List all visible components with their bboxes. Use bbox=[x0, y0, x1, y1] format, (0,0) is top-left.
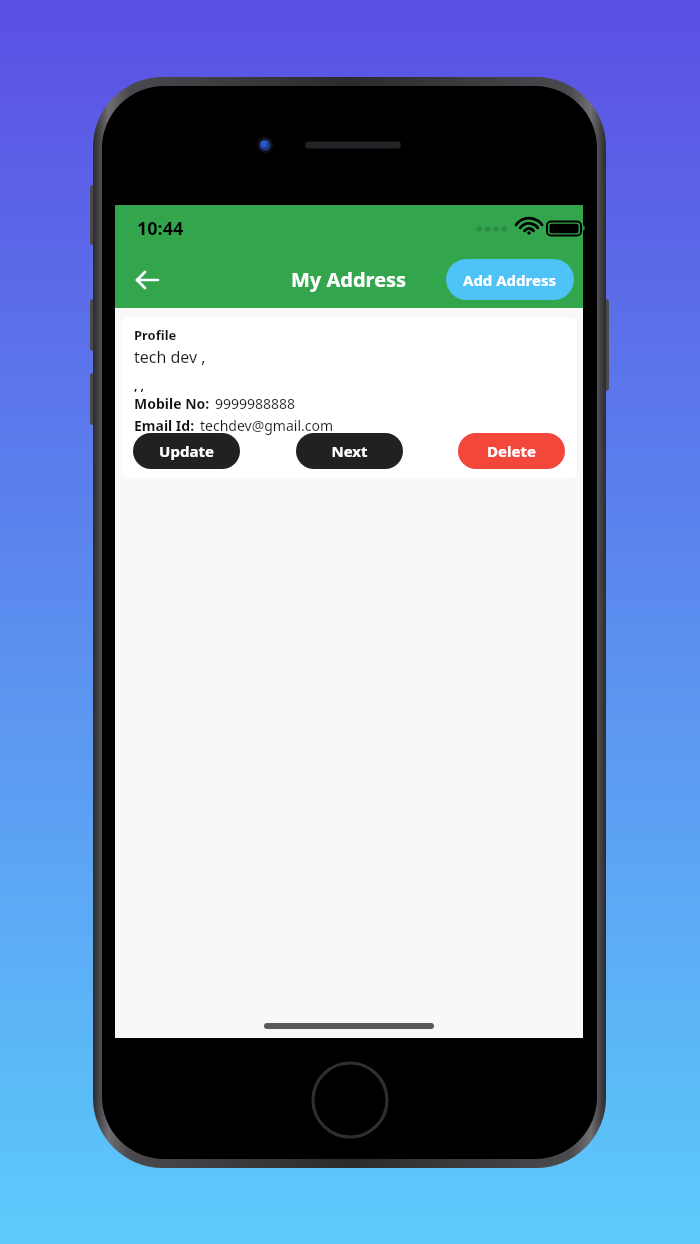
button[interactable]: Next bbox=[296, 433, 403, 469]
staticText: Profile bbox=[134, 326, 177, 344]
staticText: 10:44 bbox=[137, 216, 184, 241]
staticText: 9999988888 bbox=[215, 394, 296, 413]
staticText: Update bbox=[159, 441, 214, 461]
staticText: tech dev , bbox=[134, 346, 206, 368]
staticText: , , bbox=[134, 377, 144, 393]
staticText: techdev@gmail.com bbox=[200, 416, 334, 435]
button[interactable]: Back bbox=[125, 258, 169, 302]
button[interactable]: Profile bbox=[121, 317, 577, 478]
staticText: Mobile No: bbox=[134, 394, 210, 413]
button[interactable]: Delete bbox=[458, 433, 565, 469]
button[interactable]: Add Address bbox=[446, 259, 574, 300]
staticText: My Address bbox=[291, 266, 407, 293]
staticText: Next bbox=[331, 441, 368, 461]
button[interactable]: Update bbox=[133, 433, 240, 469]
staticText: Add Address bbox=[463, 270, 557, 290]
staticText: Email Id: bbox=[134, 416, 195, 435]
staticText: Delete bbox=[487, 441, 536, 461]
